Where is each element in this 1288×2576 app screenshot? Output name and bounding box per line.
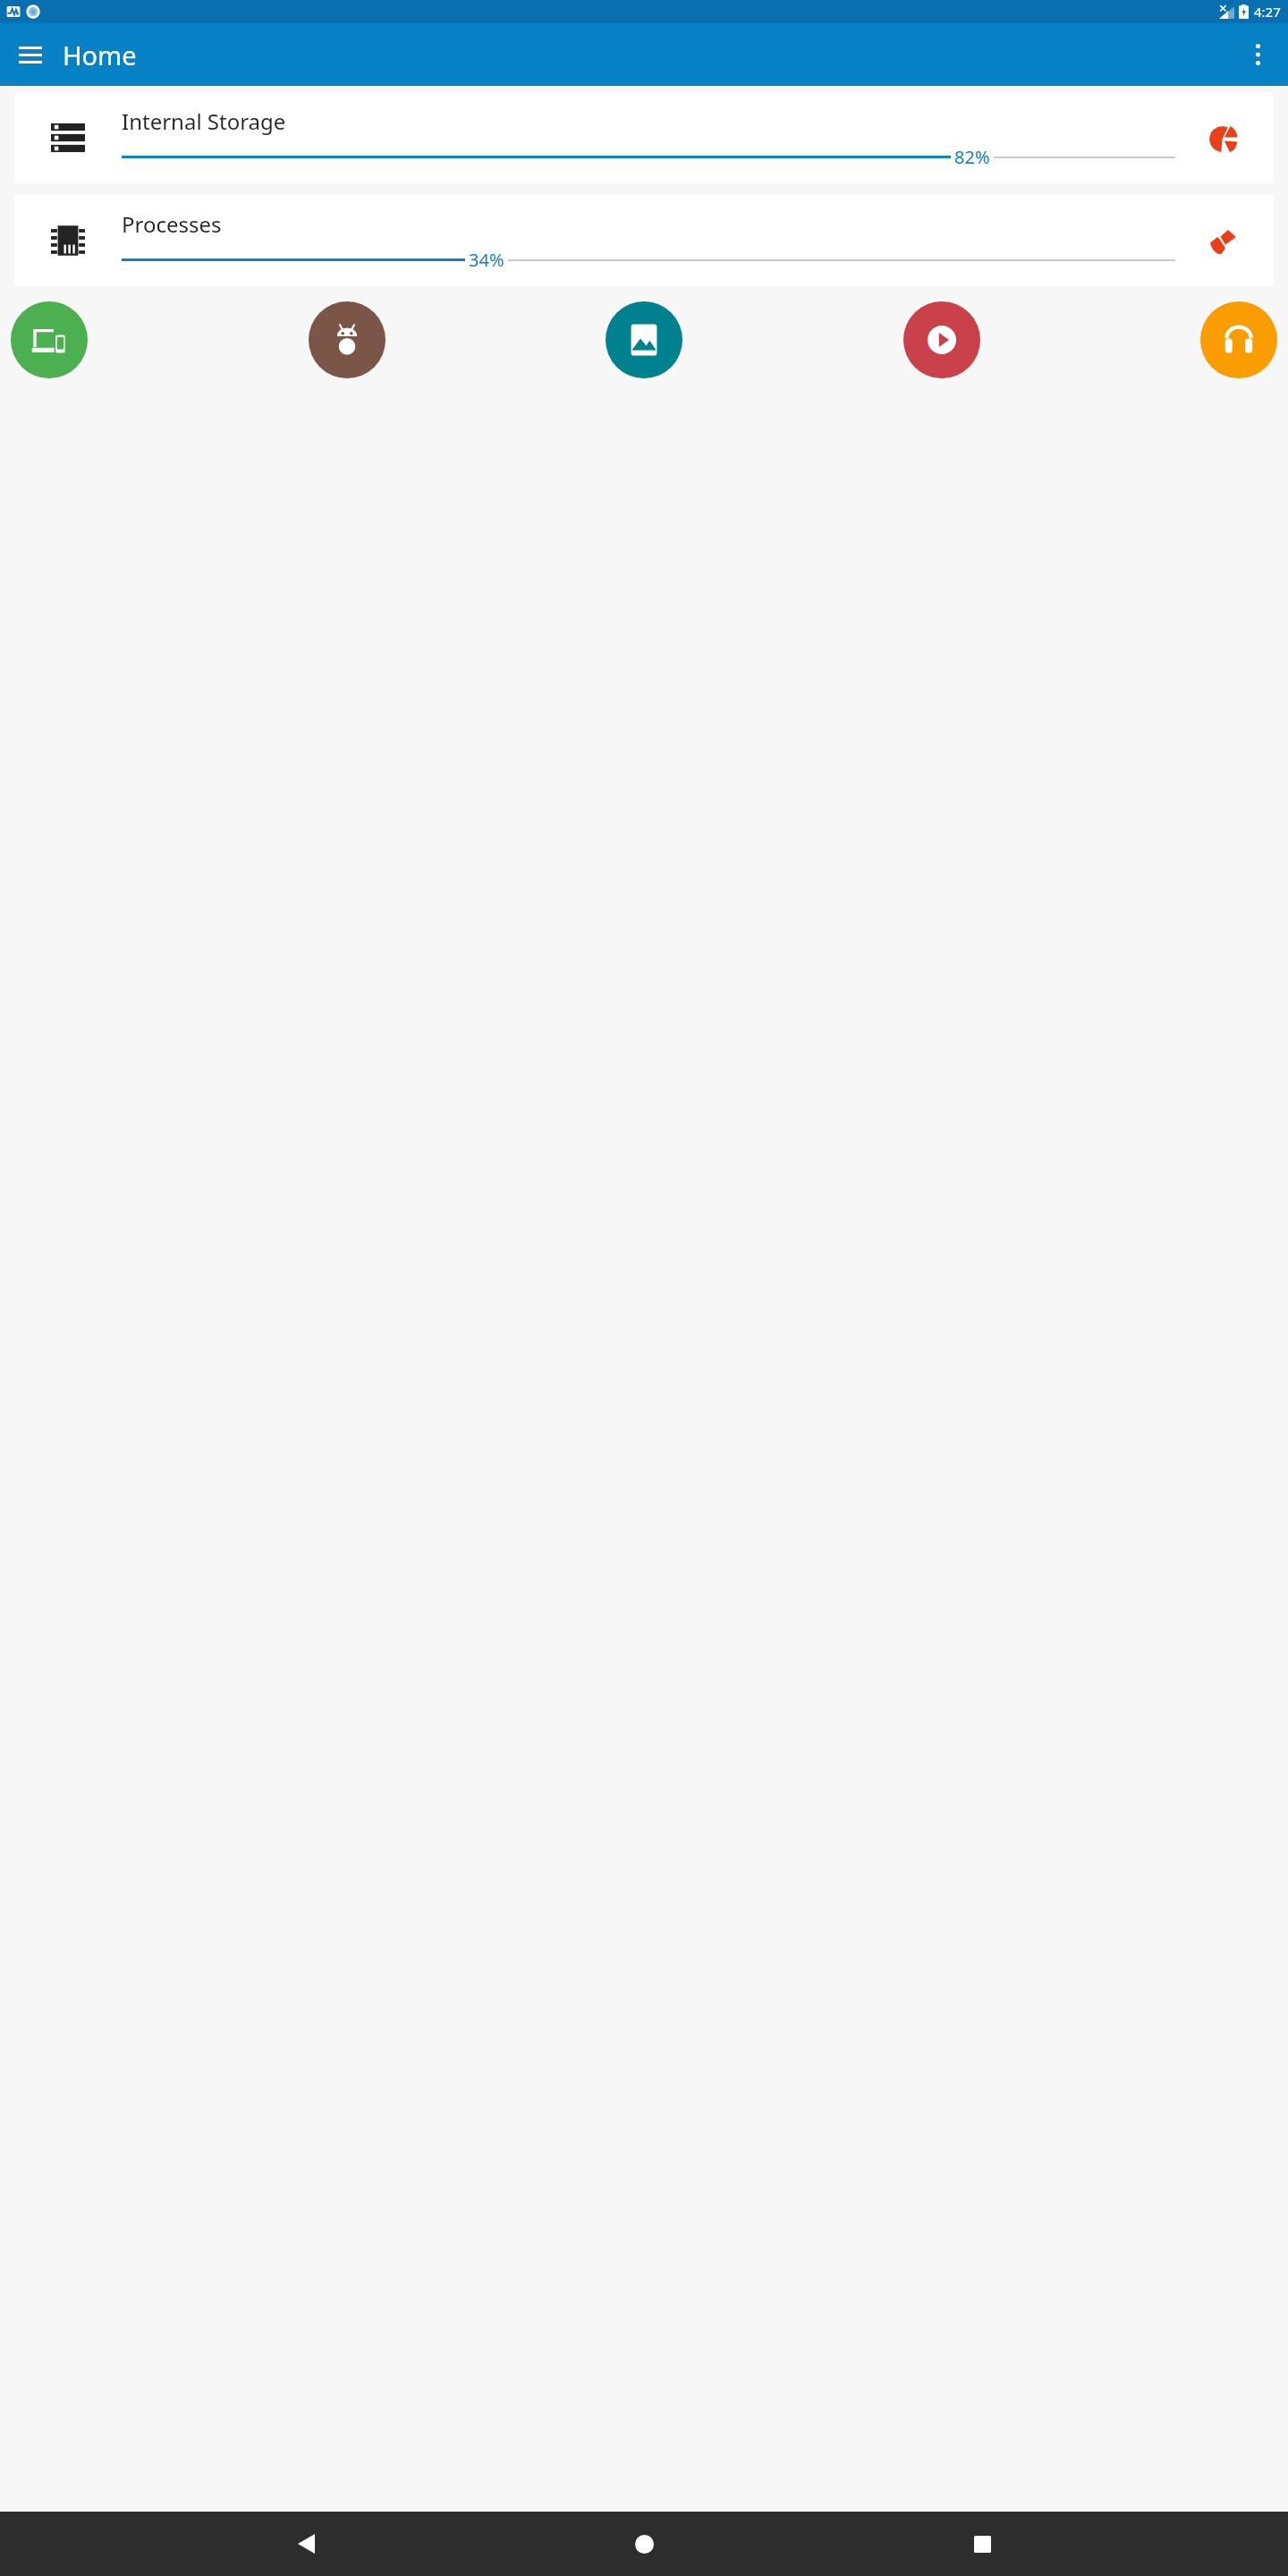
button[interactable]: Devices [11, 301, 88, 378]
staticText: 4:27 [1254, 3, 1281, 21]
button[interactable]: Clean processes [1175, 195, 1274, 286]
staticText: Home [63, 38, 137, 72]
button[interactable]: Audio [1200, 301, 1277, 378]
staticText: Internal Storage [122, 106, 286, 136]
staticText: Processes [122, 209, 222, 239]
button[interactable]: Images [606, 301, 682, 378]
button[interactable]: Internal Storage [14, 92, 1274, 183]
button[interactable]: Open navigation menu [9, 33, 52, 76]
button[interactable]: Home [612, 2512, 676, 2576]
button[interactable]: Recent apps [950, 2512, 1014, 2576]
button[interactable]: Back [274, 2512, 338, 2576]
staticText: 34% [469, 248, 504, 272]
staticText: 82% [954, 145, 990, 169]
button[interactable]: Storage details [1175, 92, 1274, 183]
button[interactable]: Apps [309, 301, 386, 378]
button[interactable]: Processes [14, 195, 1274, 286]
button[interactable]: Videos [903, 301, 980, 378]
button[interactable]: More options [1236, 33, 1279, 76]
